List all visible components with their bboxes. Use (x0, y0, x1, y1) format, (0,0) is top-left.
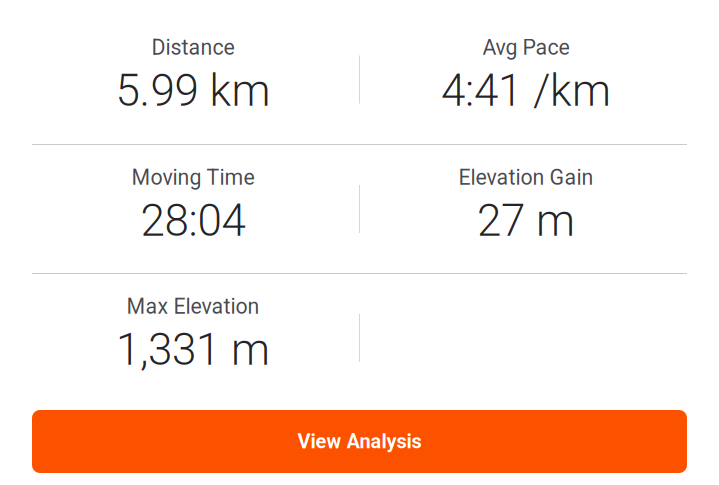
staticText: Moving Time (131, 165, 254, 190)
button[interactable]: Avg Pace (365, 15, 687, 144)
staticText: 1,331 m (116, 324, 270, 376)
staticText: Max Elevation (126, 294, 259, 319)
staticText: View Analysis (297, 430, 421, 453)
button[interactable]: Max Elevation (32, 274, 354, 402)
button[interactable]: View Analysis (32, 410, 687, 473)
staticText: 27 m (477, 195, 575, 247)
staticText: 4:41 /km (441, 65, 611, 117)
staticText: 5.99 km (115, 65, 270, 117)
staticText: 28:04 (140, 195, 245, 247)
staticText: Avg Pace (482, 35, 569, 60)
button[interactable]: Elevation Gain (365, 145, 687, 273)
staticText: Distance (151, 35, 234, 60)
staticText: Elevation Gain (458, 165, 593, 190)
button[interactable]: Distance (32, 15, 354, 144)
button[interactable]: Moving Time (32, 145, 354, 273)
